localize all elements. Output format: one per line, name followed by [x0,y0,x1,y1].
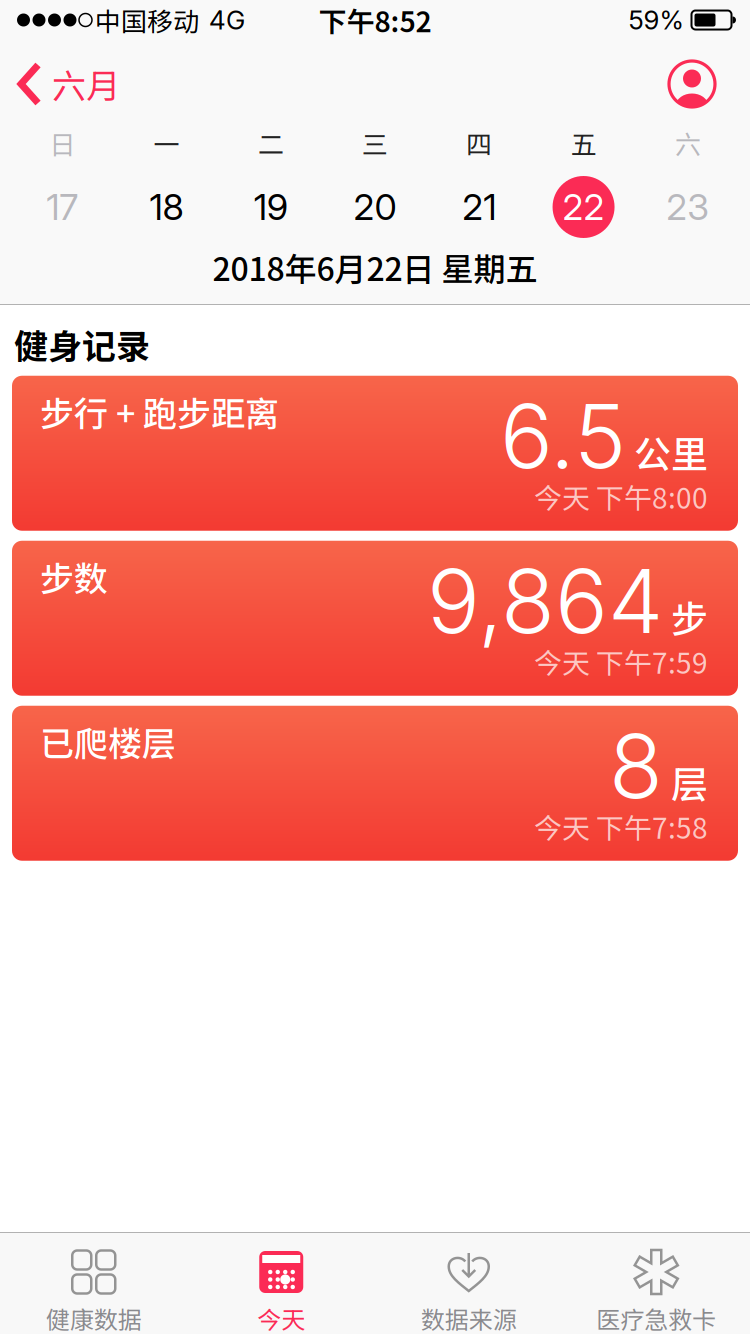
staticText: 已爬楼层 [40,717,176,766]
staticText: 19 [254,185,288,229]
staticText: 三 [362,124,388,162]
staticText: 六 [675,124,701,162]
staticText: 23 [666,185,709,229]
staticText: 今天 下午7:58 [534,806,708,847]
staticText: 五 [571,124,597,162]
staticText: 健康数据 [46,1301,142,1334]
staticText: 下午8:52 [318,0,431,40]
staticText: 今天 [257,1301,305,1334]
staticText: 中国移动 [95,1,199,39]
staticText: 数据来源 [421,1301,517,1334]
staticText: 21 [462,185,496,229]
staticText: 8 [609,713,663,819]
staticText: 9,864 [427,548,663,654]
staticText: 层 [671,755,708,809]
staticText: 公里 [634,425,708,479]
staticText: 步数 [40,552,108,601]
staticText: 22 [563,185,605,229]
staticText: 2018年6月22日 星期五 [212,244,537,290]
staticText: 6.5 [500,383,626,489]
staticText: 今天 下午7:59 [534,641,708,682]
staticText: 18 [149,185,183,229]
staticText: 4G [209,4,245,36]
staticText: 一 [153,124,179,162]
staticText: 医疗急救卡 [596,1301,716,1334]
staticText: 六月 [52,59,120,109]
staticText: 日 [49,124,75,162]
staticText: 四 [466,124,492,162]
staticText: 步行 + 跑步距离 [40,387,279,436]
staticText: 健身记录 [14,319,150,369]
staticText: 17 [46,185,78,229]
staticText: 今天 下午8:00 [534,476,708,517]
staticText: 步 [671,590,708,644]
staticText: 20 [353,185,396,229]
staticText: 二 [258,124,284,162]
staticText: 59% [628,4,683,36]
